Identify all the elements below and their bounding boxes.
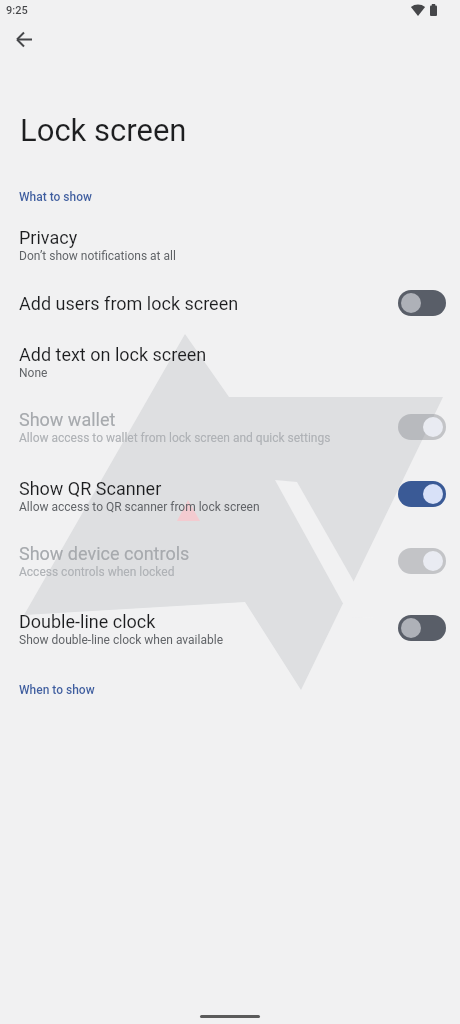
staticText: Allow access to QR scanner from lock scr… <box>19 500 260 514</box>
staticText: Show QR Scanner <box>19 478 162 499</box>
staticText: Show wallet <box>19 409 116 430</box>
staticText: 9:25 <box>6 4 28 17</box>
staticText: Add users from lock screen <box>19 293 239 314</box>
button[interactable] <box>398 615 446 641</box>
staticText: Access controls when locked <box>19 565 175 579</box>
staticText: When to show <box>19 683 95 697</box>
button[interactable]: Show wallet <box>0 399 460 463</box>
button[interactable]: Show device controls <box>0 533 460 597</box>
button[interactable]: Double-line clock <box>0 601 460 665</box>
staticText: Double-line clock <box>19 611 156 632</box>
staticText: Show device controls <box>19 543 190 564</box>
staticText: Show double-line clock when available <box>19 633 223 647</box>
button[interactable] <box>398 414 446 440</box>
staticText: Add text on lock screen <box>19 344 207 365</box>
staticText: None <box>19 366 48 380</box>
button[interactable]: Privacy <box>0 217 460 281</box>
button[interactable]: Add users from lock screen <box>0 283 460 325</box>
staticText: Privacy <box>19 227 78 248</box>
button[interactable]: Show QR Scanner <box>0 468 460 532</box>
button[interactable] <box>398 290 446 316</box>
button[interactable] <box>398 481 446 507</box>
button[interactable]: Add text on lock screen <box>0 334 460 396</box>
staticText: Don’t show notifications at all <box>19 249 176 263</box>
button[interactable] <box>5 20 44 59</box>
staticText: Allow access to wallet from lock screen … <box>19 431 331 445</box>
button[interactable] <box>398 548 446 574</box>
staticText: What to show <box>19 190 92 204</box>
staticText: Lock screen <box>20 112 187 148</box>
